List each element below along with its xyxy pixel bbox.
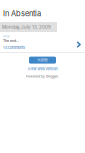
staticText: Powered by Blogger. (26, 74, 59, 78)
staticText: Home (37, 58, 47, 62)
staticText: Monday, July 13, 2009 (2, 24, 51, 30)
staticText: In Absentia (3, 9, 41, 18)
button[interactable]: View web version (27, 67, 57, 71)
button[interactable]: Home (29, 57, 56, 64)
button[interactable]: The end... (0, 32, 85, 52)
staticText: View web version (27, 67, 57, 71)
staticText: The end... (3, 39, 19, 43)
staticText: 14 comments (3, 45, 25, 50)
